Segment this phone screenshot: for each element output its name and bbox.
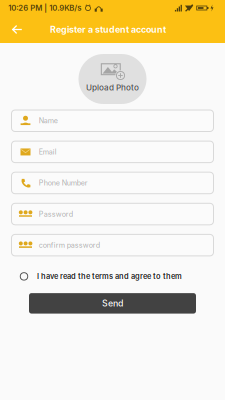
button[interactable]: Upload Photo — [78, 54, 146, 104]
button[interactable]: Send — [29, 293, 196, 314]
staticText: 10:26 PM | 10.9KB/s — [8, 3, 81, 13]
staticText: Send — [102, 298, 123, 309]
staticText: I have read the terms and agree to them — [37, 272, 182, 281]
staticText: Phone Number — [39, 179, 88, 187]
staticText: Upload Photo — [86, 82, 139, 92]
staticText: Email — [39, 147, 57, 156]
staticText: Password — [39, 210, 73, 218]
button[interactable]: I have read the terms and agree to them — [11, 269, 213, 283]
staticText: Register a student account — [50, 24, 166, 35]
staticText: confirm password — [39, 241, 100, 249]
staticText: Name — [39, 116, 58, 125]
button[interactable]: Back — [0, 17, 30, 42]
